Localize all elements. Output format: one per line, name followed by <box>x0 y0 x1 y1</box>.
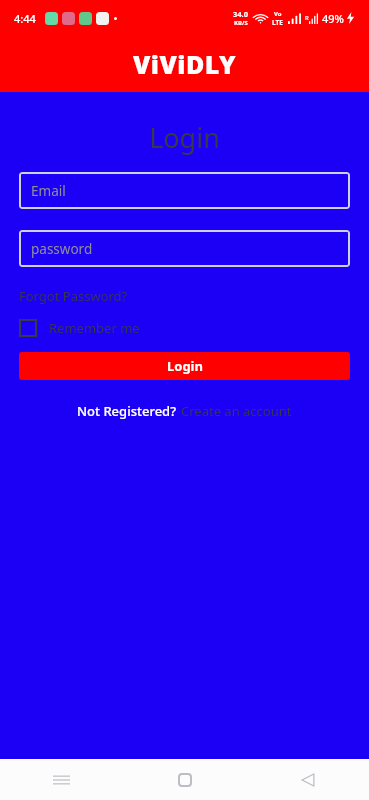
button[interactable]: Remember me <box>19 319 140 337</box>
button[interactable]: Forgot Password? <box>19 286 128 306</box>
staticText: 34.0 <box>233 9 248 19</box>
button[interactable]: Email <box>19 172 350 209</box>
button[interactable]: Create an account <box>181 402 292 420</box>
staticText: LTE <box>272 18 283 27</box>
button[interactable]: Recent apps <box>0 759 123 800</box>
staticText: KB/S <box>234 19 248 27</box>
staticText: 49% <box>322 11 344 26</box>
button[interactable]: Home <box>123 759 246 800</box>
staticText: Login <box>167 357 203 375</box>
staticText: Remember me <box>49 319 140 337</box>
staticText: Email <box>31 182 66 200</box>
button[interactable]: Back <box>246 759 369 800</box>
staticText: ViViDLY <box>133 47 237 81</box>
staticText: Create an account <box>181 402 292 420</box>
staticText: 4:44 <box>14 11 36 26</box>
staticText: R <box>305 14 309 22</box>
staticText: Forgot Password? <box>19 287 128 305</box>
staticText: password <box>31 240 93 258</box>
button[interactable]: Login <box>19 352 350 380</box>
button[interactable]: password <box>19 230 350 267</box>
staticText: Login <box>0 119 369 156</box>
staticText: Vo <box>274 10 282 18</box>
staticText: Not Registered? <box>77 402 176 420</box>
